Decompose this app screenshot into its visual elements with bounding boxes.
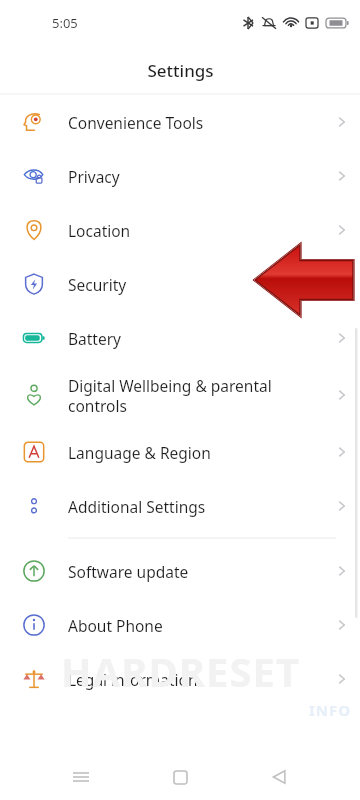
- staticText: Convenience Tools: [68, 112, 312, 133]
- button[interactable]: Software update: [0, 544, 360, 598]
- button[interactable]: Security: [0, 257, 360, 311]
- staticText: HARDRESET: [61, 644, 300, 698]
- button[interactable]: Additional Settings: [0, 479, 360, 533]
- button[interactable]: Digital Wellbeing & parental controls: [0, 365, 360, 425]
- staticText: About Phone: [68, 615, 312, 636]
- staticText: Software update: [68, 561, 312, 582]
- staticText: 5:05: [52, 14, 78, 32]
- staticText: Location: [68, 220, 312, 241]
- staticText: Security: [68, 274, 312, 295]
- staticText: INFO: [309, 700, 352, 720]
- staticText: Settings: [147, 59, 214, 82]
- button[interactable]: Battery: [0, 311, 360, 365]
- button[interactable]: Home: [159, 756, 201, 798]
- staticText: Additional Settings: [68, 496, 312, 517]
- button[interactable]: Recent apps: [60, 756, 102, 798]
- staticText: Language & Region: [68, 442, 312, 463]
- staticText: Battery: [68, 328, 312, 349]
- staticText: Privacy: [68, 166, 312, 187]
- button[interactable]: Legal information: [0, 652, 360, 706]
- button[interactable]: Location: [0, 203, 360, 257]
- staticText: Digital Wellbeing & parental controls: [68, 375, 312, 416]
- button[interactable]: Privacy: [0, 149, 360, 203]
- button[interactable]: Language & Region: [0, 425, 360, 479]
- button[interactable]: Convenience Tools: [0, 95, 360, 149]
- staticText: Legal information: [68, 669, 312, 690]
- button[interactable]: About Phone: [0, 598, 360, 652]
- button[interactable]: Back: [258, 756, 300, 798]
